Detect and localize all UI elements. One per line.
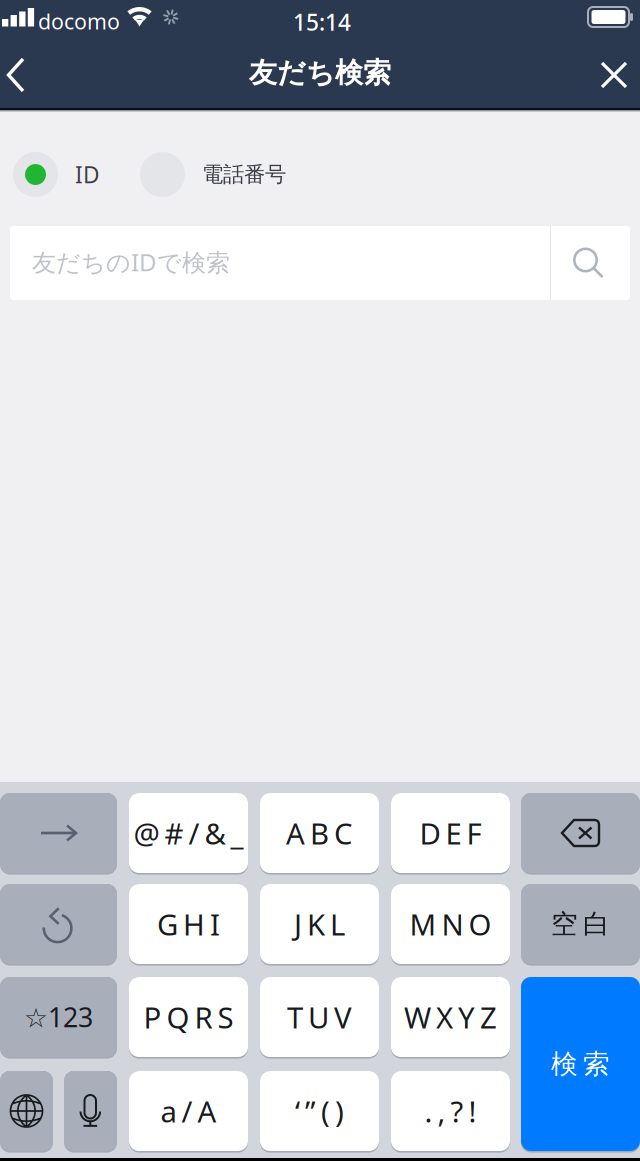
staticText: 電話番号 <box>202 161 286 188</box>
button[interactable]: 空 白 <box>521 884 640 964</box>
button[interactable]: G H I <box>129 884 248 964</box>
staticText: ☆123 <box>24 999 93 1035</box>
button[interactable]: Next keyboard <box>0 1071 53 1151</box>
button[interactable]: M N O <box>391 884 510 964</box>
staticText: M N O <box>409 904 491 943</box>
staticText: T U V <box>287 997 352 1036</box>
staticText: a / A <box>160 1091 216 1130</box>
button[interactable]: ID <box>13 152 100 197</box>
button[interactable]: Close <box>590 42 638 108</box>
button[interactable]: a / A <box>129 1071 248 1151</box>
button[interactable]: Dictation <box>64 1071 117 1151</box>
staticText: docomo <box>38 7 120 35</box>
staticText: ‘ ” ( ) <box>295 1091 344 1130</box>
staticText: 15:14 <box>293 7 351 37</box>
button[interactable]: Back <box>0 42 38 108</box>
staticText: 空 白 <box>551 908 610 940</box>
button[interactable]: . , ? ! <box>391 1071 510 1151</box>
staticText: 検 索 <box>551 1048 610 1080</box>
staticText: P Q R S <box>143 997 233 1036</box>
button[interactable]: Delete <box>521 793 640 873</box>
button[interactable]: 電話番号 <box>140 152 286 197</box>
staticText: D E F <box>419 813 481 852</box>
button[interactable]: ☆123 <box>0 977 117 1057</box>
staticText: ID <box>75 159 100 189</box>
staticText: G H I <box>157 904 220 943</box>
staticText: A B C <box>286 813 353 852</box>
button[interactable]: D E F <box>391 793 510 873</box>
staticText: J K L <box>294 904 345 943</box>
staticText: 友だち検索 <box>249 56 391 90</box>
button[interactable]: T U V <box>260 977 379 1057</box>
button[interactable]: ‘ ” ( ) <box>260 1071 379 1151</box>
button[interactable]: Undo <box>0 884 117 964</box>
staticText: 友だちのIDで検索 <box>32 246 230 278</box>
button[interactable]: A B C <box>260 793 379 873</box>
button[interactable]: 検 索 <box>521 977 640 1151</box>
staticText: . , ? ! <box>424 1091 476 1130</box>
button[interactable]: Next field <box>0 793 117 873</box>
button[interactable]: Search <box>551 226 626 300</box>
staticText: @ # / & _ <box>133 813 243 852</box>
button[interactable]: W X Y Z <box>391 977 510 1057</box>
staticText: W X Y Z <box>404 997 497 1036</box>
button[interactable]: P Q R S <box>129 977 248 1057</box>
button[interactable]: @ # / & _ <box>129 793 248 873</box>
button[interactable]: J K L <box>260 884 379 964</box>
